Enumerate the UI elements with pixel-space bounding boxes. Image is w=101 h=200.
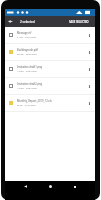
button[interactable]: Back xyxy=(21,182,30,191)
staticText: 204 kB · 05/07/2020 xyxy=(17,53,37,56)
staticText: Buildingcode.pdf xyxy=(17,48,38,52)
staticText: Message.rtf xyxy=(17,31,32,35)
button[interactable]: Recent apps xyxy=(70,182,79,191)
staticText: Invitation draft1.png xyxy=(17,65,43,69)
button[interactable]: Back xyxy=(5,16,16,27)
button[interactable]: Monthly_Report_2019_12.xls xyxy=(5,95,95,112)
staticText: Monthly_Report_2019_12.xls xyxy=(17,99,52,103)
staticText: 1.2 MB · 04/07/2020 xyxy=(17,70,37,73)
button[interactable]: More options xyxy=(83,27,95,43)
button[interactable]: More options xyxy=(83,61,95,77)
staticText: 2 selected xyxy=(20,20,35,24)
button[interactable]: Home xyxy=(46,182,55,191)
button[interactable]: Invitation draft1.png xyxy=(5,61,95,78)
button[interactable]: More options xyxy=(83,44,95,60)
button[interactable]: More options xyxy=(83,78,95,94)
staticText: 2.1 kB · 07/07/2020 xyxy=(17,36,36,39)
staticText: SAVE SELECTED xyxy=(69,20,89,24)
button[interactable]: SAVE SELECTED xyxy=(67,16,95,27)
button[interactable]: Message.rtf xyxy=(5,27,95,44)
staticText: 1.3 MB · 04/07/2020 xyxy=(17,87,37,90)
button[interactable]: Buildingcode.pdf xyxy=(5,44,95,61)
staticText: 88 kB · 21/01/2020 xyxy=(17,104,36,107)
button[interactable]: More options xyxy=(83,95,95,111)
staticText: Invitation draft2.png xyxy=(17,82,43,86)
button[interactable]: Invitation draft2.png xyxy=(5,78,95,95)
